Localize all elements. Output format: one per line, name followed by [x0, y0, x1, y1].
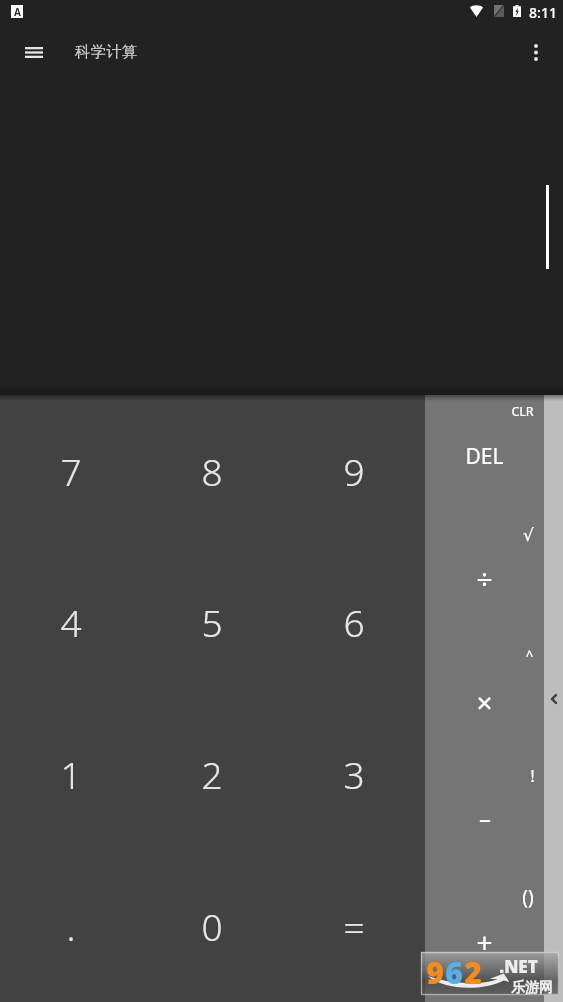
staticText: 7 — [60, 446, 82, 496]
staticText: 9 — [343, 446, 365, 496]
staticText: 0 — [201, 901, 223, 951]
button[interactable]: Collapse panel — [544, 677, 563, 721]
button[interactable]: √ — [516, 517, 541, 549]
button[interactable]: ^ — [518, 639, 541, 671]
staticText: ÷ — [476, 559, 493, 597]
button[interactable]: () — [515, 881, 541, 913]
button[interactable]: ! — [522, 760, 541, 792]
staticText: () — [522, 884, 534, 910]
staticText: ^ — [525, 646, 534, 665]
button[interactable]: – — [425, 760, 544, 881]
staticText: 4 — [60, 597, 82, 647]
staticText: A — [14, 5, 21, 18]
staticText: 5 — [201, 597, 223, 647]
staticText: 乐游网 — [511, 979, 553, 997]
staticText: = — [343, 901, 365, 951]
button[interactable]: 5 — [141, 546, 283, 698]
button[interactable]: 1 — [0, 698, 141, 850]
staticText: .NET — [499, 955, 538, 978]
staticText: 2 — [201, 749, 223, 799]
button[interactable]: + — [425, 881, 544, 1002]
staticText: ! — [530, 764, 535, 787]
staticText: 3 — [343, 749, 365, 799]
button[interactable]: 9 — [283, 395, 425, 546]
button[interactable]: 2 — [141, 698, 283, 850]
staticText: 8 — [201, 446, 223, 496]
button[interactable]: 4 — [0, 546, 141, 698]
staticText: – — [479, 801, 491, 834]
button[interactable]: CLR — [504, 395, 541, 427]
staticText: 6 — [445, 952, 463, 993]
staticText: 9 — [426, 952, 444, 993]
button[interactable]: 6 — [283, 546, 425, 698]
button[interactable]: 7 — [0, 395, 141, 546]
staticText: 科学计算 — [75, 42, 137, 62]
staticText: 6 — [343, 597, 365, 647]
staticText: CLR — [511, 403, 534, 420]
staticText: . — [66, 901, 76, 951]
staticText: + — [476, 923, 493, 961]
button[interactable]: Menu — [9, 38, 59, 66]
button[interactable]: More options — [516, 40, 556, 64]
button[interactable]: 3 — [283, 698, 425, 850]
button[interactable]: . — [0, 850, 141, 1002]
button[interactable]: DEL — [425, 395, 544, 517]
staticText: 8:11 — [529, 3, 557, 22]
button[interactable]: = — [283, 850, 425, 1002]
button[interactable]: 0 — [141, 850, 283, 1002]
button[interactable]: 8 — [141, 395, 283, 546]
staticText: 1 — [60, 749, 82, 799]
staticText: DEL — [465, 442, 504, 471]
staticText: 2 — [464, 952, 482, 993]
button[interactable]: ÷ — [425, 517, 544, 639]
staticText: × — [476, 683, 493, 721]
staticText: √ — [523, 525, 534, 545]
button[interactable]: × — [425, 639, 544, 760]
